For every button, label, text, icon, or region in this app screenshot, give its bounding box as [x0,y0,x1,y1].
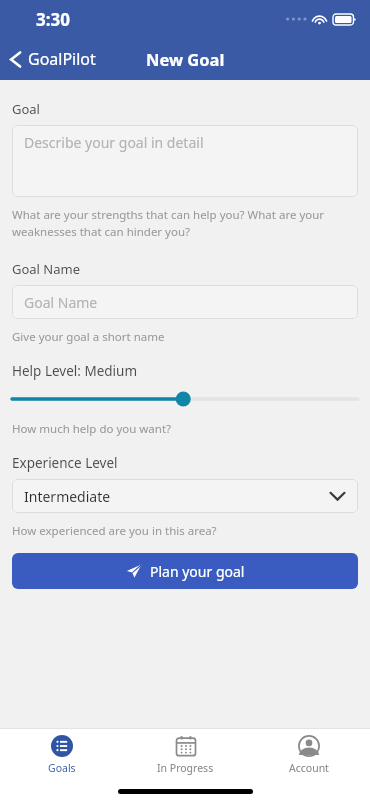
staticText: New Goal [146,48,225,70]
staticText: Intermediate [24,487,111,506]
staticText: Goals [48,761,76,775]
other: In Progress [175,735,197,757]
staticText: Help Level: Medium [12,362,138,380]
staticText: 3:30 [36,8,70,31]
button[interactable]: Goals [0,729,124,782]
staticText: Give your goal a short name [12,329,165,345]
staticText: Experience Level [12,454,118,472]
button[interactable]: Intermediate [12,479,358,513]
staticText: How much help do you want? [12,421,172,437]
staticText: Describe your goal in detail [24,133,204,152]
staticText: How experienced are you in this area? [12,523,217,539]
button[interactable]: Account [247,729,370,782]
staticText: Plan your goal [150,562,245,581]
staticText: Account [289,761,329,775]
button[interactable]: In Progress [124,729,247,782]
button[interactable]: Plan your goal [12,553,358,589]
button[interactable]: Goal Name [12,285,358,319]
staticText: GoalPilot [28,48,96,70]
staticText: Goal Name [12,260,81,278]
staticText: Goal Name [24,293,98,311]
staticText: What are your strengths that can help yo… [12,207,325,223]
staticText: In Progress [157,761,214,775]
staticText: weaknesses that can hinder you? [12,224,191,240]
button[interactable]: GoalPilot [0,42,106,76]
button[interactable]: Help level slider [12,390,358,408]
button[interactable]: Describe your goal in detail [12,125,358,197]
staticText: Goal [12,100,40,118]
other: Account [298,735,320,757]
other: Goals [51,735,73,757]
